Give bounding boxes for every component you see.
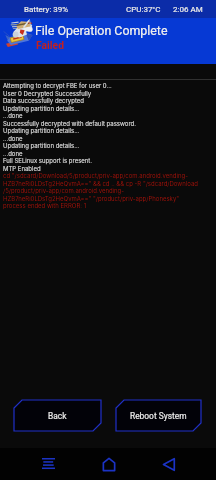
staticText: User 0 Decrypted Successfully <box>3 90 92 97</box>
staticText: Updating partition details... <box>3 142 80 149</box>
staticText: Full SELinux support is present. <box>3 157 93 164</box>
staticText: Battery: 39% <box>24 5 69 14</box>
button[interactable]: Back <box>147 448 191 480</box>
staticText: Successfully decrypted with default pass… <box>3 120 136 127</box>
staticText: Failed <box>36 39 65 51</box>
staticText: 2:06 AM <box>173 5 203 14</box>
staticText: CPU:37°C <box>126 5 161 14</box>
staticText: ...done <box>3 112 23 119</box>
staticText: ...done <box>3 135 23 142</box>
button[interactable]: Back <box>14 400 101 431</box>
staticText: MTP Enabled <box>3 165 41 172</box>
staticText: HZB7neRi0LDsTg2HeQvmA==" && cd .. && cp … <box>3 180 198 187</box>
staticText: Data successfully decrypted <box>3 97 84 104</box>
staticText: Back <box>48 411 67 421</box>
staticText: HZB7neRi0LDsTg2HeQvmA==" "/product/priv-… <box>3 195 180 202</box>
staticText: Updating partition details... <box>3 105 80 112</box>
staticText: /5/product/priv-app/com.android.vending- <box>3 187 125 194</box>
staticText: Reboot System <box>130 411 187 421</box>
button[interactable]: Home <box>87 448 131 480</box>
staticText: process ended with ERROR: 1 <box>3 202 87 209</box>
staticText: ...done <box>3 150 23 157</box>
staticText: Updating partition details... <box>3 127 80 134</box>
button[interactable]: Recent apps <box>26 448 70 480</box>
button[interactable]: Reboot System <box>116 400 201 431</box>
staticText: Attempting to decrypt FBE for user 0... <box>3 82 112 89</box>
staticText: File Operation Complete <box>35 23 168 38</box>
staticText: cd "/sdcard/Download/5/product/priv-app/… <box>3 172 188 179</box>
